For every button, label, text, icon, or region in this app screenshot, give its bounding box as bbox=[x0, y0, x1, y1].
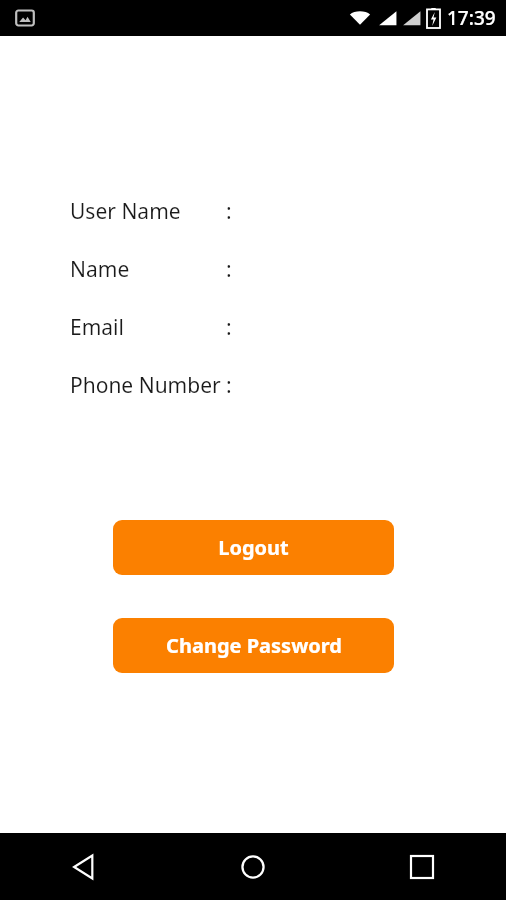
staticText: Phone Number bbox=[70, 371, 221, 400]
button[interactable]: Back bbox=[0, 833, 168, 900]
staticText: : bbox=[226, 371, 232, 400]
staticText: Name bbox=[70, 255, 130, 284]
staticText: : bbox=[226, 313, 232, 342]
staticText: Change Password bbox=[166, 632, 342, 659]
staticText: Logout bbox=[218, 534, 289, 561]
button[interactable]: Recent apps bbox=[337, 833, 506, 900]
button[interactable]: Change Password bbox=[113, 618, 394, 673]
button[interactable]: Logout bbox=[113, 520, 394, 575]
staticText: : bbox=[226, 197, 232, 226]
staticText: Email bbox=[70, 313, 124, 342]
staticText: User Name bbox=[70, 197, 181, 226]
button[interactable]: Home bbox=[168, 833, 337, 900]
staticText: : bbox=[226, 255, 232, 284]
staticText: 17:39 bbox=[447, 5, 496, 31]
